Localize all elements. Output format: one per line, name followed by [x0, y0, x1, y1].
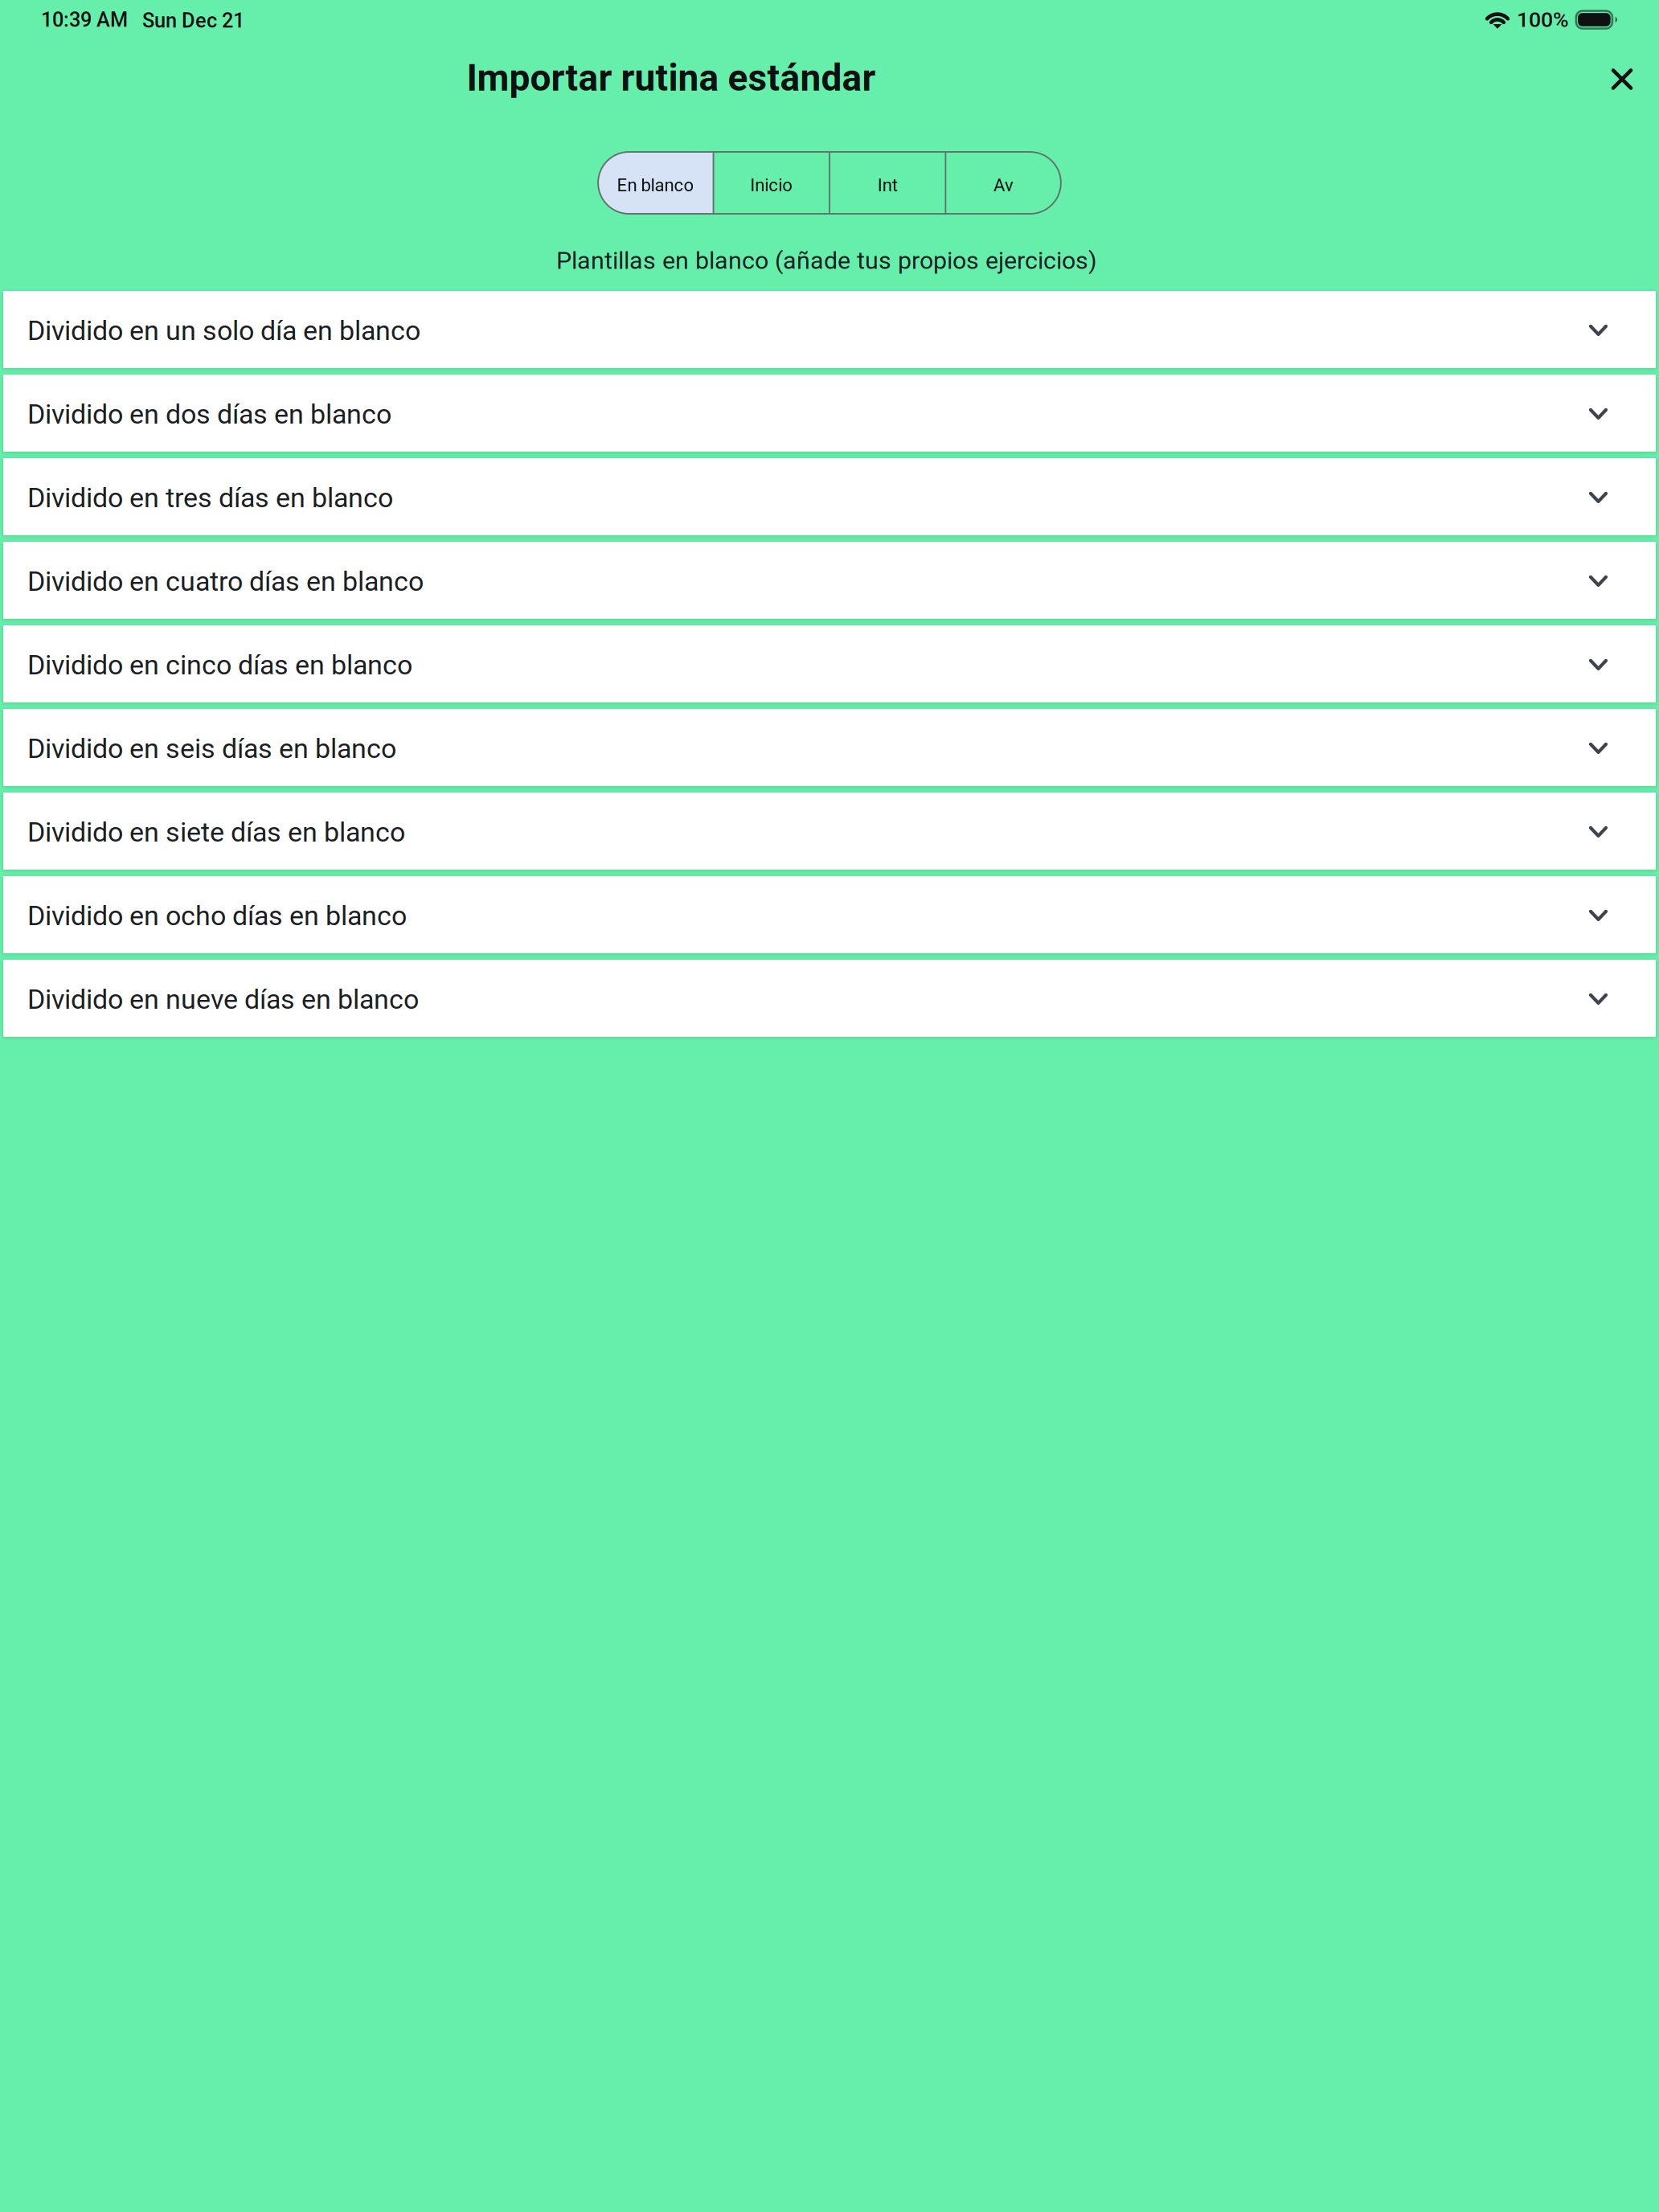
staticText: Importar rutina estándar [467, 56, 876, 100]
staticText: Dividido en cuatro días en blanco [27, 565, 424, 597]
button[interactable]: Dividido en cuatro días en blanco [3, 542, 1656, 619]
button[interactable]: Av [946, 152, 1061, 214]
staticText: 10:39 AM [41, 8, 128, 32]
staticText: Dividido en siete días en blanco [27, 816, 405, 848]
staticText: Dividido en tres días en blanco [27, 482, 393, 514]
button[interactable]: Inicio [714, 152, 829, 214]
staticText: Dividido en seis días en blanco [27, 733, 396, 765]
button[interactable]: Dividido en dos días en blanco [3, 375, 1656, 452]
button[interactable]: Dividido en tres días en blanco [3, 458, 1656, 535]
button[interactable]: Dividido en nueve días en blanco [3, 960, 1656, 1037]
staticText: 100% [1517, 7, 1569, 32]
button[interactable]: Dividido en siete días en blanco [3, 793, 1656, 870]
button[interactable]: Int [830, 152, 945, 214]
staticText: Dividido en ocho días en blanco [27, 900, 407, 932]
button[interactable]: Dividido en seis días en blanco [3, 709, 1656, 786]
staticText: Dividido en un solo día en blanco [27, 315, 420, 347]
button[interactable]: Dividido en un solo día en blanco [3, 291, 1656, 368]
staticText: Dividido en nueve días en blanco [27, 983, 419, 1015]
button[interactable]: En blanco [598, 152, 713, 214]
staticText: Inicio [750, 175, 793, 196]
staticText: Int [877, 175, 898, 196]
button[interactable]: Close [1342, 39, 1659, 115]
button[interactable]: Dividido en ocho días en blanco [3, 876, 1656, 953]
staticText: Dividido en cinco días en blanco [27, 649, 412, 681]
staticText: Plantillas en blanco (añade tus propios … [556, 246, 1097, 275]
staticText: En blanco [617, 175, 694, 196]
staticText: Sun Dec 21 [128, 9, 244, 32]
staticText: Dividido en dos días en blanco [27, 398, 391, 430]
button[interactable]: Dividido en cinco días en blanco [3, 625, 1656, 702]
staticText: Av [994, 175, 1014, 196]
